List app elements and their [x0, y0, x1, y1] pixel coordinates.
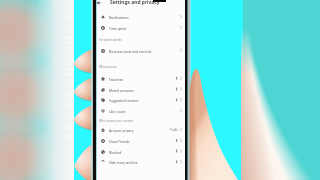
button[interactable]: Hide story and live	[96, 156, 185, 167]
staticText: Blocked	[109, 150, 122, 154]
staticText: Account privacy	[109, 128, 134, 132]
button[interactable]: Notifications	[96, 11, 185, 22]
button[interactable]: Like count	[96, 105, 185, 116]
button[interactable]: Favorites	[96, 73, 185, 84]
staticText: Suggested content	[109, 98, 139, 102]
staticText: Favorites	[109, 77, 124, 81]
staticText: Who can see your content	[99, 119, 134, 123]
button[interactable]: Close Friends	[96, 135, 185, 146]
button[interactable]: Suggested content	[96, 94, 185, 105]
button[interactable]: Muted accounts	[96, 84, 185, 95]
staticText: Time spent	[109, 26, 127, 30]
button[interactable]: Business tools and controls	[96, 45, 185, 56]
button[interactable]: Account privacy	[96, 124, 185, 135]
staticText: Settings and privacy	[110, 0, 160, 6]
staticText: What you see	[99, 65, 117, 69]
staticText: Public	[170, 128, 179, 132]
button[interactable]: Time spent	[96, 22, 185, 33]
staticText: Business tools and controls	[109, 49, 152, 53]
staticText: For professionals	[99, 38, 122, 42]
button[interactable]: Back	[96, 0, 103, 7]
staticText: Like count	[109, 109, 125, 113]
staticText: Muted accounts	[109, 88, 134, 92]
staticText: Hide story and live	[109, 160, 138, 164]
button[interactable]: Blocked	[96, 146, 185, 157]
staticText: Close Friends	[109, 139, 130, 143]
staticText: Notifications	[109, 15, 129, 19]
